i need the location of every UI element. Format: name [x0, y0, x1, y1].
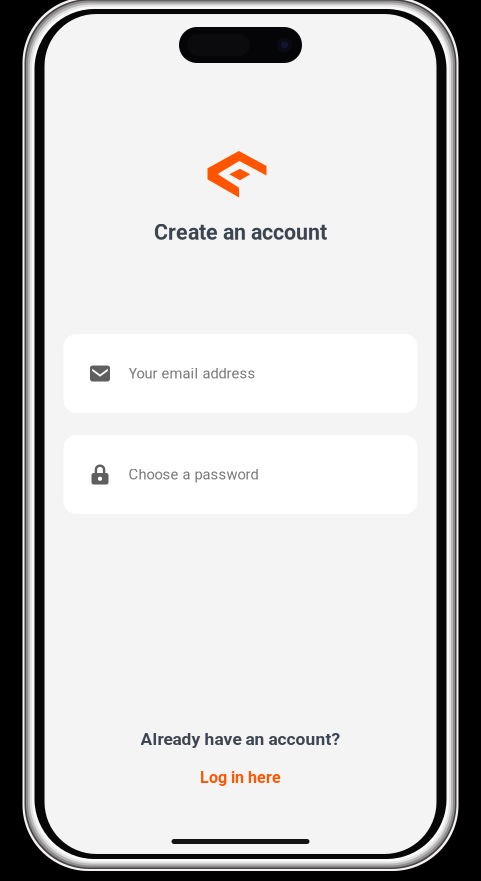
button[interactable]: Choose a password: [63, 435, 417, 514]
button[interactable]: Log in here: [182, 763, 299, 792]
staticText: Already have an account?: [140, 729, 340, 749]
staticText: Create an account: [154, 220, 327, 245]
button[interactable]: Your email address: [63, 334, 417, 413]
staticText: Choose a password: [128, 466, 258, 483]
staticText: Your email address: [128, 365, 255, 382]
staticText: Log in here: [200, 768, 281, 787]
